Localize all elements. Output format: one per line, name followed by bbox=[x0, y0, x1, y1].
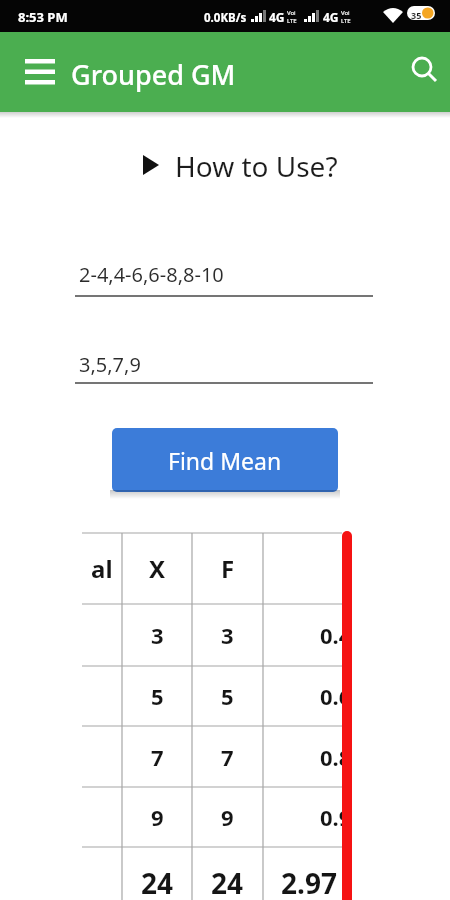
staticText: 3,5,7,9 bbox=[79, 351, 141, 378]
staticText: 24 bbox=[211, 864, 244, 900]
staticText: 3 bbox=[221, 620, 234, 650]
staticText: 0.845 bbox=[320, 742, 342, 772]
staticText: 24 bbox=[141, 864, 174, 900]
staticText: 0.477 bbox=[320, 620, 342, 650]
staticText: 0.0KB/s bbox=[204, 10, 247, 26]
staticText: F bbox=[221, 552, 235, 585]
button[interactable]: 3,5,7,9 bbox=[75, 339, 373, 385]
staticText: X bbox=[149, 552, 166, 585]
staticText: 35 bbox=[411, 9, 422, 21]
staticText: 5 bbox=[221, 681, 234, 711]
staticText: 3 bbox=[151, 620, 164, 650]
staticText: 8:53 PM bbox=[18, 8, 68, 26]
staticText: 0.954 bbox=[320, 802, 342, 832]
staticText: Voi bbox=[341, 9, 350, 17]
button[interactable] bbox=[402, 46, 448, 92]
staticText: 9 bbox=[221, 802, 234, 832]
staticText: Voi bbox=[287, 9, 296, 17]
staticText: 4G bbox=[323, 9, 339, 25]
staticText: 5 bbox=[151, 681, 164, 711]
staticText: 2.97 bbox=[281, 864, 337, 900]
staticText: al bbox=[91, 552, 113, 585]
button[interactable] bbox=[14, 50, 66, 94]
button[interactable]: How to Use? bbox=[141, 147, 338, 185]
button[interactable]: Find Mean bbox=[112, 428, 338, 492]
staticText: 9 bbox=[151, 802, 164, 832]
staticText: LTE bbox=[287, 17, 297, 25]
staticText: LTE bbox=[341, 17, 351, 25]
staticText: Grouped GM bbox=[71, 56, 236, 93]
staticText: 4G bbox=[269, 9, 285, 25]
staticText: How to Use? bbox=[175, 147, 338, 185]
staticText: 0.699 bbox=[320, 681, 342, 711]
staticText: Find Mean bbox=[168, 445, 282, 476]
staticText: 2-4,4-6,6-8,8-10 bbox=[79, 261, 224, 288]
staticText: 7 bbox=[221, 742, 234, 772]
staticText: 7 bbox=[151, 742, 164, 772]
button[interactable]: 2-4,4-6,6-8,8-10 bbox=[75, 252, 373, 298]
